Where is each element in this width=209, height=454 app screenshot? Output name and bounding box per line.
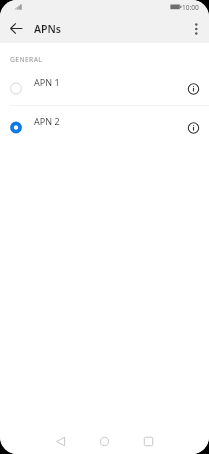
staticText: APN 1 [34, 76, 60, 88]
button[interactable]: Info [178, 110, 208, 140]
staticText: GENERAL [10, 55, 43, 64]
staticText: APN 2 [34, 115, 60, 127]
button[interactable]: Back [2, 14, 31, 43]
staticText: APNs [34, 22, 62, 36]
button[interactable]: More options [180, 14, 209, 43]
button[interactable]: APN 1 [0, 67, 209, 105]
button[interactable]: APN 2 [0, 106, 209, 144]
button[interactable]: Recent apps [128, 429, 169, 454]
staticText: 10:00 [182, 3, 199, 12]
button[interactable]: Home [84, 429, 125, 454]
button[interactable]: Back [40, 429, 81, 454]
button[interactable]: Info [178, 71, 208, 101]
